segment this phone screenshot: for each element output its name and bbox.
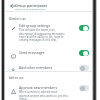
button[interactable] — [4, 64, 93, 73]
staticText: Group setting permissions — [15, 7, 47, 10]
staticText: Edit group settings — [19, 23, 51, 28]
staticText: When turned on, admins must approve anyo… — [19, 90, 68, 100]
staticText: Group participants — [15, 3, 48, 8]
button[interactable]: Turn on Approve new members — [79, 85, 89, 91]
staticText: Send messages — [19, 50, 45, 55]
button[interactable] — [4, 84, 93, 100]
button[interactable]: Turn on Add other members — [79, 65, 89, 71]
staticText: This includes the name, icon, descriptio… — [19, 28, 68, 41]
button[interactable]: Back — [9, 2, 17, 10]
staticText: Add other members — [19, 65, 53, 70]
staticText: Members can — [9, 17, 26, 21]
staticText: Admins can — [9, 76, 24, 80]
button[interactable]: Turn off Send messages — [79, 50, 89, 56]
button[interactable] — [4, 21, 93, 41]
button[interactable]: Turn off Edit group settings — [79, 25, 89, 31]
staticText: Approve new members — [19, 85, 58, 90]
button[interactable] — [4, 49, 93, 58]
